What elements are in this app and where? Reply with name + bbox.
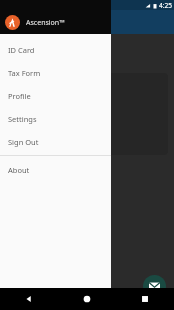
staticText: ID Card: [8, 45, 35, 55]
button[interactable]: Sign Out: [0, 130, 111, 153]
button[interactable]: Home: [58, 288, 116, 310]
staticText: Tap here to install Adobe: [6, 44, 82, 53]
button[interactable]: Recent apps: [116, 288, 174, 310]
button[interactable]: Profile: [0, 84, 111, 107]
staticText: Download: [28, 138, 59, 147]
button[interactable]: Download: [13, 136, 73, 149]
staticText: Ascension™: [26, 18, 65, 28]
staticText: About: [8, 165, 30, 175]
staticText: Settings: [8, 114, 37, 124]
button[interactable]: Tax Form: [0, 61, 111, 84]
button[interactable]: Compose message: [143, 275, 166, 298]
button[interactable]: About: [0, 158, 111, 181]
button[interactable]: Back: [0, 288, 58, 310]
staticText: 4:25: [159, 1, 172, 10]
staticText: Tax Form: [8, 68, 41, 78]
button[interactable]: ID Card: [0, 38, 111, 61]
staticText: Sign Out: [8, 137, 39, 147]
button[interactable]: Settings: [0, 107, 111, 130]
staticText: Profile: [8, 91, 31, 101]
